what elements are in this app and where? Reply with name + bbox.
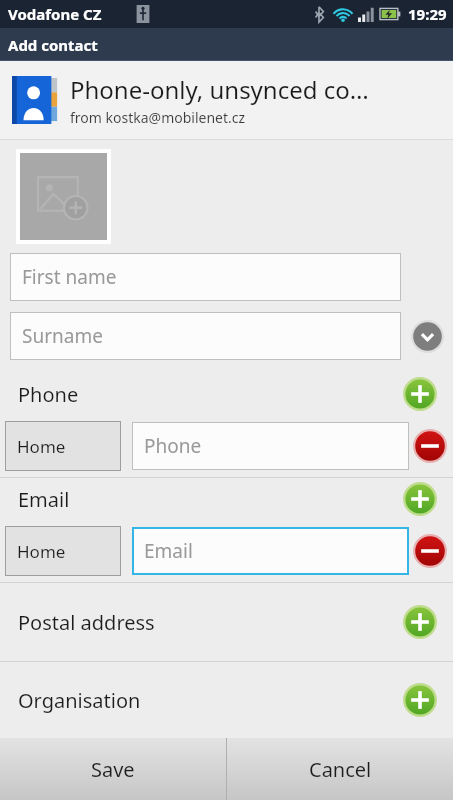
button[interactable]: Add	[399, 478, 441, 520]
staticText: Home	[17, 540, 66, 563]
button[interactable]: Add photo	[20, 153, 107, 240]
staticText: Phone-only, unsynced co…	[70, 73, 369, 106]
staticText: First name	[22, 264, 117, 290]
button[interactable]: Add	[399, 601, 441, 643]
button[interactable]: Add	[399, 679, 441, 721]
staticText: Postal address	[18, 609, 399, 636]
staticText: 19:29	[408, 4, 447, 24]
staticText: Organisation	[18, 687, 399, 714]
button[interactable]: Phone	[132, 422, 409, 470]
staticText: Cancel	[309, 756, 372, 783]
staticText: Phone	[18, 381, 399, 408]
button[interactable]: Save	[0, 738, 226, 800]
staticText: Add contact	[8, 35, 98, 55]
staticText: Save	[91, 756, 135, 783]
staticText: Phone	[144, 433, 202, 459]
button[interactable]: Add	[399, 373, 441, 415]
button[interactable]: Remove	[409, 530, 451, 572]
staticText: Vodafone CZ	[8, 4, 102, 24]
staticText: Email	[18, 486, 399, 513]
button[interactable]: Home	[5, 421, 121, 471]
staticText: Email	[144, 538, 193, 564]
button[interactable]: Remove	[409, 425, 451, 467]
button[interactable]: Expand name fields	[401, 312, 453, 360]
button[interactable]: Email	[132, 527, 409, 575]
button[interactable]: Home	[5, 526, 121, 576]
button[interactable]: Surname	[10, 312, 401, 360]
button[interactable]: First name	[10, 253, 401, 301]
staticText: from kostka@mobilenet.cz	[70, 108, 246, 127]
button[interactable]: Cancel	[227, 738, 453, 800]
staticText: Home	[17, 435, 66, 458]
staticText: Surname	[22, 323, 103, 349]
